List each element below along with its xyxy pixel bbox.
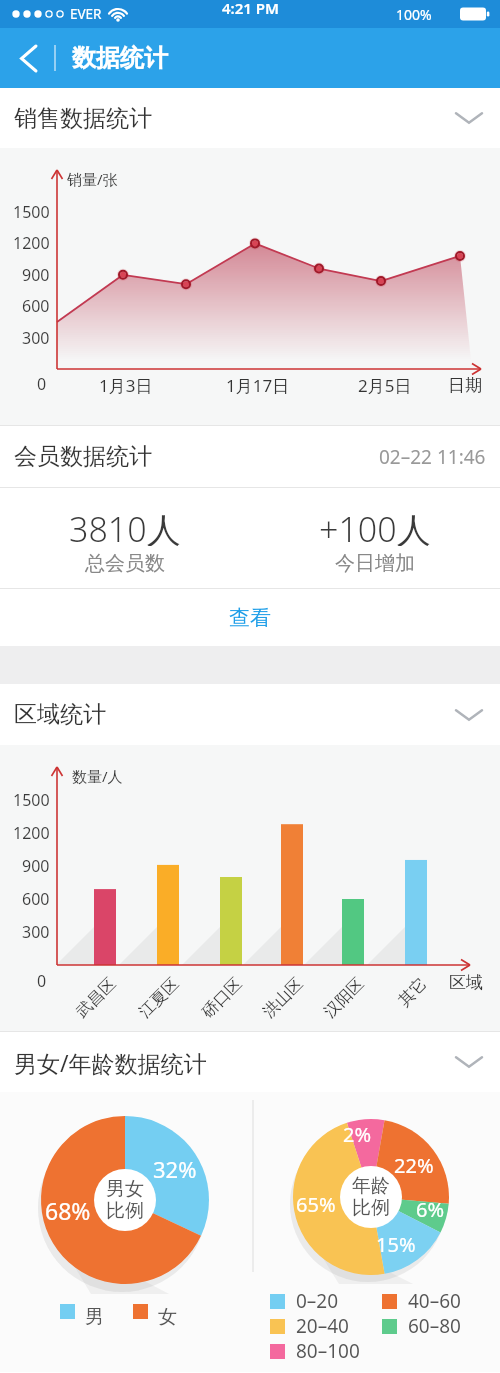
staticText: 查看 <box>229 605 271 631</box>
staticText: 100% <box>396 5 432 24</box>
staticText: 22% <box>394 1152 434 1179</box>
staticText: 600 <box>22 888 50 910</box>
staticText: 数量/人 <box>72 766 123 786</box>
button[interactable]: 销售数据统计 <box>0 88 500 148</box>
staticText: 总会员数 <box>85 551 165 576</box>
staticText: 0–20 <box>296 1288 339 1314</box>
staticText: 2月5日 <box>358 374 412 397</box>
staticText: 6% <box>416 1196 445 1223</box>
staticText: 数据统计 <box>72 43 168 73</box>
staticText: 1200 <box>13 232 50 254</box>
button[interactable]: 会员数据统计 <box>0 426 500 487</box>
staticText: 2% <box>343 1121 372 1148</box>
button[interactable]: 区域统计 <box>0 684 500 745</box>
staticText: 40–60 <box>408 1288 461 1314</box>
staticText: 20–40 <box>296 1313 349 1339</box>
staticText: 1月3日 <box>99 374 153 397</box>
staticText: 900 <box>22 855 50 877</box>
staticText: 32% <box>153 1154 197 1184</box>
staticText: 300 <box>22 921 50 943</box>
staticText: 女 <box>158 1305 177 1329</box>
staticText: 今日增加 <box>335 551 415 576</box>
staticText: 区域 <box>449 972 483 993</box>
staticText: 65% <box>296 1191 336 1218</box>
staticText: 15% <box>376 1231 416 1258</box>
staticText: 区域统计 <box>14 700 106 729</box>
staticText: 900 <box>22 264 50 286</box>
staticText: 男女 <box>106 1177 144 1201</box>
staticText: 男女/年龄数据统计 <box>14 1047 207 1078</box>
staticText: 男 <box>85 1305 104 1329</box>
staticText: 年龄 <box>352 1174 390 1198</box>
staticText: 1200 <box>13 822 50 844</box>
staticText: 销售数据统计 <box>14 104 152 133</box>
staticText: 洪山区 <box>259 974 307 1022</box>
staticText: 江夏区 <box>135 974 183 1022</box>
button[interactable] <box>0 28 56 88</box>
staticText: 600 <box>22 295 50 317</box>
staticText: 02–22 11:46 <box>379 444 486 470</box>
button[interactable]: 男女/年龄数据统计 <box>0 1032 500 1092</box>
staticText: 60–80 <box>408 1313 461 1339</box>
staticText: 68% <box>45 1195 91 1226</box>
staticText: 比例 <box>352 1196 390 1220</box>
staticText: +100人 <box>319 506 431 546</box>
staticText: 日期 <box>448 375 482 396</box>
staticText: 会员数据统计 <box>14 442 152 471</box>
staticText: 3810人 <box>69 506 181 546</box>
button[interactable]: 查看 <box>0 589 500 646</box>
staticText: 汉阳区 <box>320 974 368 1022</box>
staticText: 比例 <box>106 1199 144 1223</box>
staticText: 其它 <box>394 974 431 1011</box>
staticText: 销量/张 <box>67 169 118 189</box>
staticText: 80–100 <box>296 1338 360 1364</box>
staticText: 1500 <box>13 201 50 223</box>
staticText: 0 <box>37 970 47 992</box>
staticText: 300 <box>22 327 50 349</box>
staticText: 1500 <box>13 789 50 811</box>
staticText: 1月17日 <box>226 374 290 397</box>
staticText: 4:21 PM <box>222 0 279 18</box>
staticText: EVER <box>70 5 102 23</box>
staticText: 武昌区 <box>72 974 120 1022</box>
staticText: 0 <box>37 373 47 395</box>
staticText: 硚口区 <box>198 974 246 1022</box>
